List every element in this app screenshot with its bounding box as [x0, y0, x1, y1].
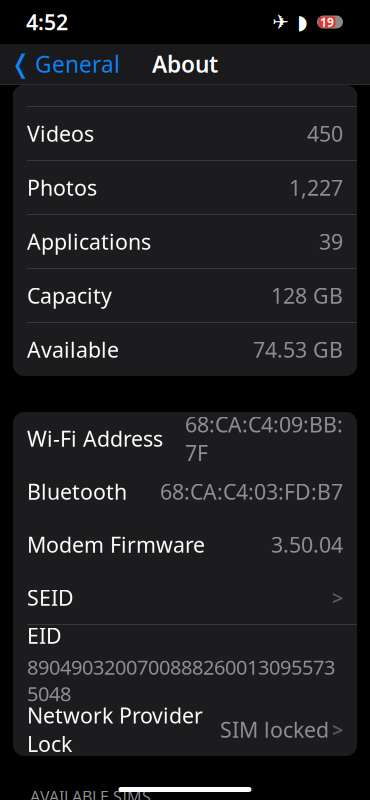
button[interactable]: ❬: [0, 43, 120, 85]
staticText: 1,227: [289, 173, 343, 202]
staticText: Available: [27, 335, 119, 364]
staticText: 3.50.04: [271, 530, 343, 559]
staticText: >: [332, 584, 343, 611]
staticText: 39: [319, 227, 343, 256]
staticText: 68:CA:C4:09:BB:7F: [185, 410, 343, 467]
staticText: 68:CA:C4:03:FD:B7: [160, 477, 343, 506]
button[interactable]: Bluetooth: [13, 465, 357, 518]
staticText: Photos: [27, 173, 97, 202]
staticText: Videos: [27, 119, 94, 148]
button[interactable]: Photos: [13, 161, 357, 214]
staticText: EID: [27, 621, 62, 650]
button[interactable]: SEID: [13, 571, 357, 624]
staticText: Capacity: [27, 281, 112, 310]
staticText: ❬: [10, 50, 31, 78]
button[interactable]: EID: [13, 625, 357, 703]
staticText: ◗: [297, 11, 308, 33]
button[interactable]: Capacity: [13, 269, 357, 322]
staticText: 89049032007008882600130955735048: [27, 654, 335, 707]
staticText: Network Provider Lock: [27, 701, 203, 758]
button[interactable]: Applications: [13, 215, 357, 268]
button[interactable]: Wi-Fi Address: [13, 412, 357, 465]
button[interactable]: Network Provider Lock: [13, 703, 357, 756]
staticText: About: [152, 49, 218, 79]
staticText: Modem Firmware: [27, 530, 205, 559]
staticText: >: [332, 716, 343, 743]
staticText: Bluetooth: [27, 477, 127, 506]
staticText: Wi-Fi Address: [27, 424, 163, 453]
staticText: 74.53 GB: [253, 335, 343, 364]
staticText: 4:52: [26, 8, 68, 36]
button[interactable]: Videos: [13, 107, 357, 160]
staticText: ✈: [272, 11, 289, 33]
staticText: 19: [320, 14, 334, 30]
staticText: AVAILABLE SIMS: [30, 786, 151, 800]
staticText: 128 GB: [271, 281, 343, 310]
button[interactable]: Available: [13, 323, 357, 376]
staticText: General: [35, 49, 120, 79]
staticText: SIM locked: [220, 715, 329, 744]
staticText: Applications: [27, 227, 151, 256]
staticText: SEID: [27, 583, 74, 612]
button[interactable]: Modem Firmware: [13, 518, 357, 571]
staticText: 450: [307, 119, 343, 148]
